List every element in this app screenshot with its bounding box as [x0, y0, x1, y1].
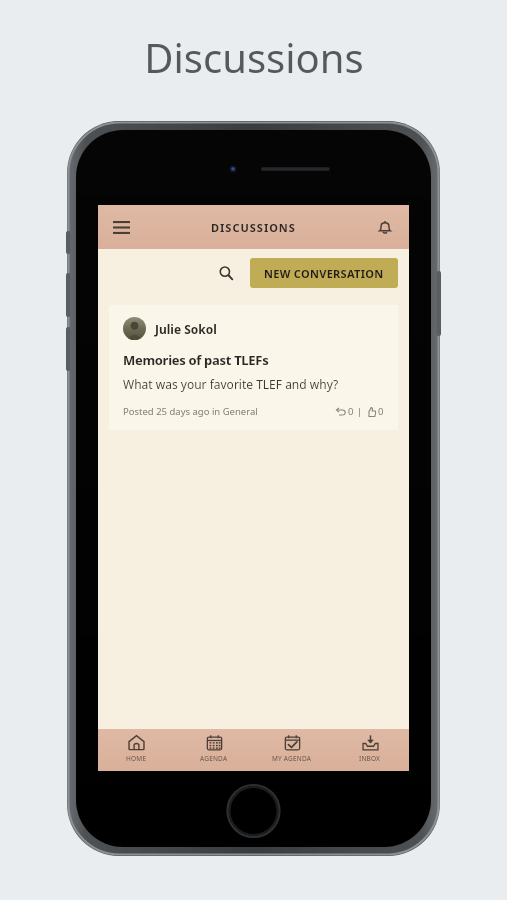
- staticText: Posted 25 days ago in General: [123, 405, 258, 418]
- button[interactable]: MY AGENDA: [253, 729, 331, 771]
- button[interactable]: Notifications: [370, 212, 400, 242]
- staticText: Discussions: [144, 30, 364, 84]
- staticText: |: [357, 405, 363, 418]
- staticText: Julie Sokol: [155, 321, 217, 337]
- staticText: What was your favorite TLEF and why?: [123, 376, 339, 392]
- button[interactable]: AGENDA: [175, 729, 253, 771]
- staticText: INBOX: [359, 754, 381, 763]
- staticText: MY AGENDA: [272, 754, 312, 763]
- staticText: NEW CONVERSATION: [264, 266, 384, 281]
- staticText: Memories of past TLEFs: [123, 351, 269, 369]
- button[interactable]: NEW CONVERSATION: [250, 258, 398, 288]
- staticText: DISCUSSIONS: [211, 220, 296, 235]
- staticText: 0: [348, 405, 354, 418]
- staticText: HOME: [126, 754, 147, 763]
- button[interactable]: HOME: [98, 729, 175, 771]
- button[interactable]: Search: [210, 257, 242, 289]
- button[interactable]: Menu: [106, 212, 136, 242]
- button[interactable]: INBOX: [331, 729, 409, 771]
- staticText: 0: [378, 405, 384, 418]
- staticText: AGENDA: [200, 754, 228, 763]
- button[interactable]: Julie Sokol: [109, 305, 398, 430]
